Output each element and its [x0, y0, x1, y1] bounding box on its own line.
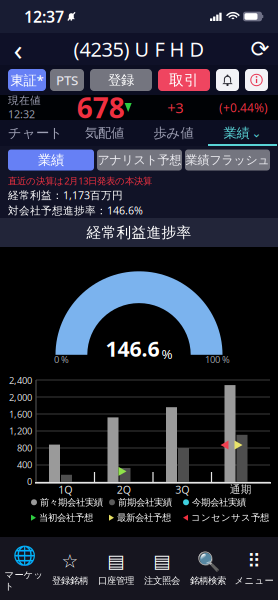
staticText: 2Q — [117, 482, 131, 497]
staticText: 2,000 — [9, 391, 32, 403]
staticText: 業績 — [223, 125, 249, 141]
staticText: ‹ — [13, 29, 22, 68]
button[interactable]: Back — [0, 34, 36, 64]
staticText: 当初会社予想 — [36, 512, 93, 523]
staticText: 登録 — [108, 72, 134, 88]
staticText: 0 % — [54, 353, 69, 366]
button[interactable]: 業績 — [208, 120, 277, 146]
button[interactable]: アナリスト予想 — [97, 149, 182, 170]
staticText: ⠿ — [247, 551, 261, 572]
staticText: チャート — [8, 125, 63, 141]
staticText: 経常利益進捗率 — [86, 223, 191, 241]
staticText: 今期会社実績 — [189, 496, 246, 508]
staticText: 注文照会 — [144, 575, 180, 586]
staticText: 経常利益：1,173百万円 — [8, 188, 123, 202]
button[interactable]: 業績 — [8, 149, 94, 170]
staticText: 東証* — [10, 71, 43, 89]
staticText: (+0.44%) — [219, 99, 268, 115]
staticText: 通期 — [230, 483, 252, 496]
button[interactable]: 🔍 — [185, 546, 231, 590]
staticText: 12:37 — [24, 6, 64, 27]
staticText: アナリスト予想 — [97, 153, 181, 167]
staticText: 🌐 — [12, 545, 35, 566]
staticText: +3 — [167, 98, 183, 117]
button[interactable]: ☆ — [47, 546, 93, 590]
staticText: 1,200 — [9, 425, 32, 437]
staticText: PTS — [56, 71, 78, 89]
staticText: 1,600 — [9, 408, 32, 420]
staticText: 1Q — [58, 482, 72, 497]
staticText: % — [161, 345, 172, 363]
button[interactable]: PTS — [50, 69, 84, 91]
staticText: 🔍 — [196, 551, 219, 572]
staticText: 対会社予想進捗率：146.6% — [8, 203, 143, 217]
staticText: 0 — [27, 475, 32, 488]
staticText: 前期会社実績 — [115, 496, 172, 508]
staticText: 800 — [17, 442, 32, 454]
button[interactable]: 歩み値 — [139, 120, 208, 146]
staticText: メニュー — [234, 575, 273, 586]
staticText: 銘柄検索 — [190, 575, 226, 586]
staticText: 気配値 — [85, 125, 124, 141]
staticText: ⌄ — [251, 126, 261, 140]
button[interactable]: Alerts — [216, 69, 239, 91]
staticText: 現在値 — [8, 94, 41, 107]
staticText: マーケット — [4, 569, 43, 592]
staticText: 口座管理 — [98, 575, 134, 586]
staticText: (4235) U F H D — [73, 36, 204, 62]
button[interactable]: ⠿ — [231, 546, 277, 590]
button[interactable]: 登録 — [90, 69, 152, 91]
staticText: 前々期会社実績 — [37, 496, 103, 508]
staticText: 400 — [17, 458, 32, 471]
button[interactable]: Refresh — [242, 34, 278, 64]
staticText: 3Q — [175, 482, 189, 497]
staticText: 100 % — [205, 353, 230, 366]
button[interactable]: チャート — [1, 120, 70, 146]
staticText: 678 — [77, 89, 125, 126]
staticText: 取引 — [169, 71, 199, 89]
staticText: ▤ — [107, 551, 125, 572]
button[interactable]: ▤ — [93, 546, 139, 590]
button[interactable]: 東証* — [8, 69, 46, 91]
staticText: 直近の決算は2月13日発表の本決算 — [8, 175, 152, 187]
staticText: 最新会社予想 — [114, 512, 171, 523]
staticText: 業績フラッシュ — [185, 153, 269, 167]
button[interactable]: 業績フラッシュ — [185, 149, 270, 170]
button[interactable]: 🌐 — [1, 546, 47, 590]
staticText: 登録銘柄 — [52, 575, 88, 586]
staticText: コンセンサス予想 — [188, 512, 269, 523]
staticText: 2,400 — [9, 374, 32, 387]
staticText: ☆ — [61, 551, 78, 572]
staticText: 12:32 — [8, 107, 35, 121]
button[interactable]: ▤ — [139, 546, 185, 590]
staticText: 146.6 — [105, 334, 159, 363]
button[interactable]: 気配値 — [70, 120, 139, 146]
button[interactable]: 取引 — [158, 69, 210, 91]
staticText: 歩み値 — [153, 125, 193, 141]
staticText: ▤ — [153, 551, 171, 572]
staticText: 業績 — [38, 152, 64, 168]
button[interactable]: Info — [245, 69, 268, 91]
staticText: ⟳ — [250, 36, 269, 62]
